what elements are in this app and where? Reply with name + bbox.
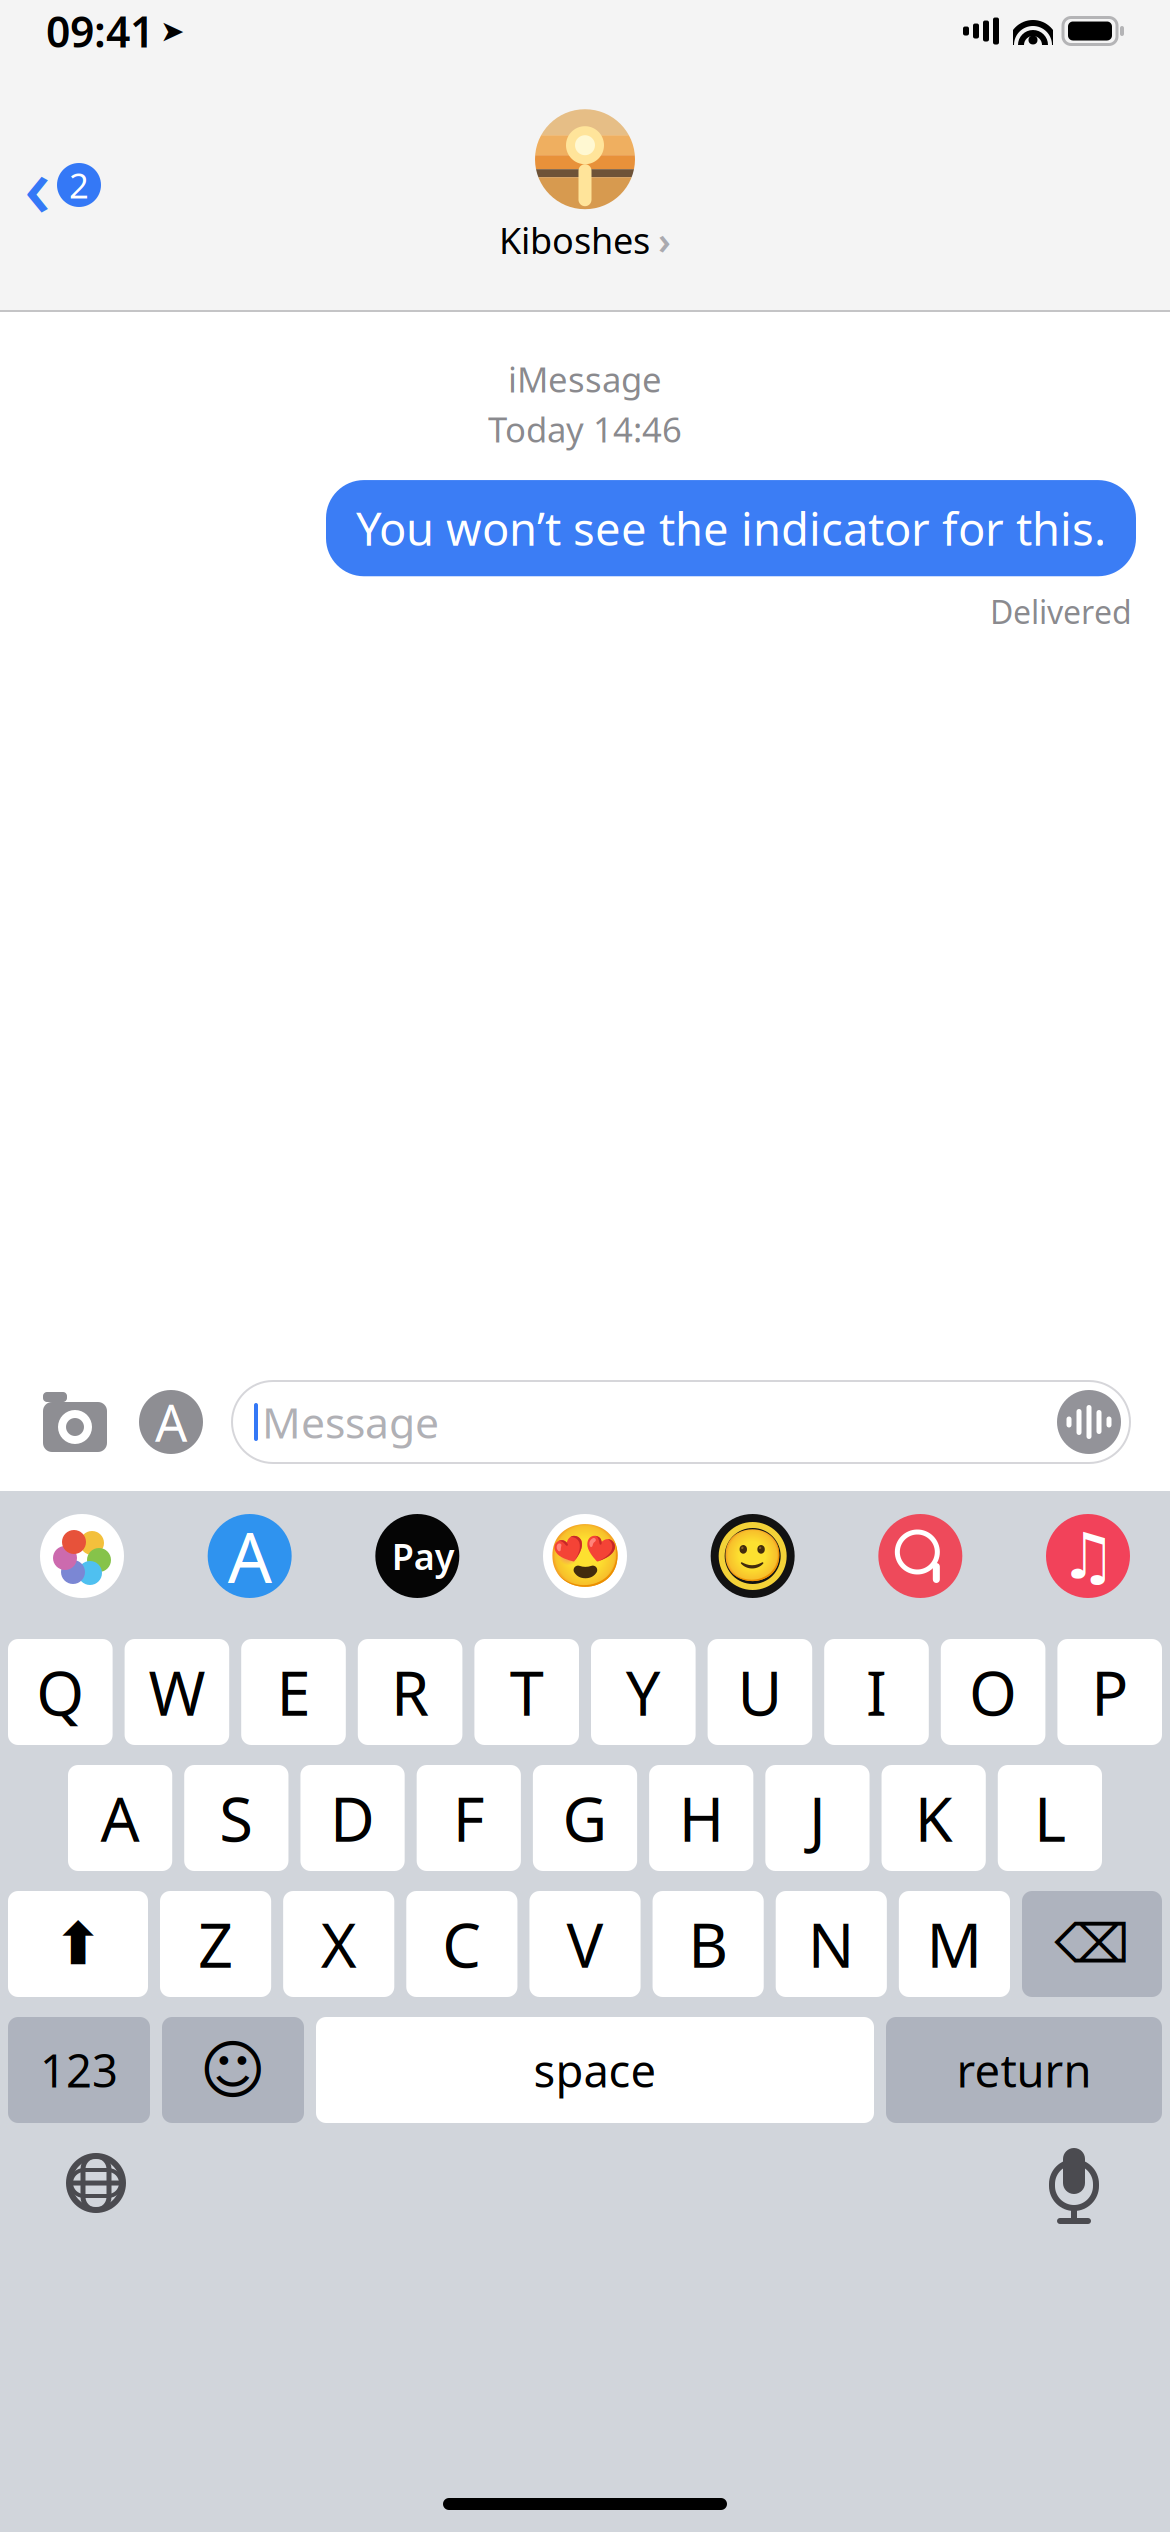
- button[interactable]: I: [824, 1639, 929, 1745]
- staticText: D: [330, 1777, 375, 1859]
- staticText: return: [956, 2040, 1091, 2100]
- staticText: I: [866, 1651, 887, 1733]
- staticText: R: [391, 1651, 429, 1733]
- button[interactable]: Photos: [40, 1514, 124, 1598]
- button[interactable]: Memoji: [711, 1514, 795, 1598]
- staticText: 😍: [547, 1521, 623, 1591]
- staticText: Delivered: [990, 590, 1132, 633]
- button[interactable]: Next keyboard: [54, 2137, 138, 2229]
- staticText: Today 14:46: [488, 406, 682, 452]
- staticText: 09:41: [46, 3, 154, 59]
- button[interactable]: V: [529, 1891, 640, 1997]
- button[interactable]: W: [125, 1639, 229, 1745]
- button[interactable]: M: [899, 1891, 1010, 1997]
- button[interactable]: P: [1057, 1639, 1162, 1745]
- staticText: Pay: [392, 1532, 455, 1580]
- staticText: W: [148, 1651, 205, 1733]
- button[interactable]: E: [241, 1639, 346, 1745]
- button[interactable]: Memoji stickers: [543, 1514, 627, 1598]
- button[interactable]: L: [998, 1765, 1102, 1871]
- staticText: 123: [40, 2040, 118, 2100]
- staticText: iMessage: [508, 356, 662, 402]
- staticText: 2: [69, 162, 89, 208]
- staticText: U: [737, 1651, 782, 1733]
- staticText: ➤: [160, 14, 185, 48]
- button[interactable]: O: [941, 1639, 1045, 1745]
- staticText: You won’t see the indicator for this.: [356, 498, 1106, 558]
- button[interactable]: G: [533, 1765, 637, 1871]
- staticText: C: [442, 1903, 481, 1985]
- staticText: A: [101, 1777, 140, 1859]
- staticText: ♫: [1059, 1520, 1116, 1592]
- button[interactable]: 123: [8, 2017, 150, 2123]
- button[interactable]: Take photo or video: [40, 1387, 110, 1457]
- button[interactable]: Q: [8, 1639, 113, 1745]
- button[interactable]: D: [300, 1765, 405, 1871]
- staticText: H: [679, 1777, 724, 1859]
- staticText: ⬆: [53, 1911, 102, 1977]
- staticText: M: [926, 1903, 982, 1985]
- staticText: A: [228, 1510, 272, 1602]
- button[interactable]: Z: [160, 1891, 271, 1997]
- button[interactable]: A: [68, 1765, 172, 1871]
- button[interactable]: ⌫: [1022, 1891, 1162, 1997]
- button[interactable]: return: [886, 2017, 1162, 2123]
- button[interactable]: T: [474, 1639, 579, 1745]
- button[interactable]: ☺: [162, 2017, 304, 2123]
- staticText: ›: [658, 215, 671, 265]
- button[interactable]: ⬆: [8, 1891, 148, 1997]
- button[interactable]: H: [649, 1765, 753, 1871]
- button[interactable]: S: [184, 1765, 288, 1871]
- staticText: S: [219, 1777, 253, 1859]
- button[interactable]: space: [316, 2017, 874, 2123]
- staticText: J: [809, 1777, 826, 1859]
- button[interactable]: K: [882, 1765, 986, 1871]
- button[interactable]: R: [358, 1639, 462, 1745]
- button[interactable]: J: [765, 1765, 869, 1871]
- staticText: 🙂: [721, 1527, 784, 1585]
- staticText: Z: [198, 1903, 233, 1985]
- staticText: Message: [262, 1394, 439, 1450]
- staticText: X: [321, 1903, 357, 1985]
- staticText: L: [1034, 1777, 1066, 1859]
- staticText: V: [566, 1903, 603, 1985]
- staticText: Y: [626, 1651, 661, 1733]
- button[interactable]: F: [417, 1765, 521, 1871]
- button[interactable]: U: [708, 1639, 812, 1745]
- button[interactable]: Dictate: [1032, 2137, 1116, 2229]
- staticText: Kiboshes: [499, 216, 650, 264]
- staticText: A: [155, 1388, 187, 1456]
- staticText: G: [562, 1777, 607, 1859]
- button[interactable]: Open iMessage apps: [136, 1387, 206, 1457]
- button[interactable]: N: [776, 1891, 887, 1997]
- staticText: Q: [36, 1651, 84, 1733]
- button[interactable]: Music: [1046, 1514, 1130, 1598]
- button[interactable]: Kiboshes, contact details: [483, 101, 687, 273]
- staticText: B: [688, 1903, 728, 1985]
- button[interactable]: Images: [878, 1514, 962, 1598]
- staticText: P: [1091, 1651, 1128, 1733]
- staticText: ‹: [24, 130, 51, 240]
- staticText: ⌫: [1054, 1914, 1129, 1974]
- button[interactable]: Back, 2 unread messages: [0, 124, 119, 250]
- staticText: ☺: [199, 2034, 266, 2106]
- button[interactable]: C: [406, 1891, 517, 1997]
- staticText: T: [510, 1651, 544, 1733]
- staticText: F: [453, 1777, 485, 1859]
- staticText: O: [969, 1651, 1017, 1733]
- button[interactable]: Record audio message: [1054, 1387, 1124, 1457]
- staticText: K: [915, 1777, 953, 1859]
- button[interactable]: B: [653, 1891, 764, 1997]
- staticText: N: [808, 1903, 855, 1985]
- button[interactable]: X: [283, 1891, 394, 1997]
- button[interactable]: Y: [591, 1639, 696, 1745]
- staticText: E: [276, 1651, 310, 1733]
- staticText: space: [533, 2040, 656, 2100]
- button[interactable]: App Store: [208, 1514, 292, 1598]
- button[interactable]: Apple Pay: [375, 1514, 459, 1598]
